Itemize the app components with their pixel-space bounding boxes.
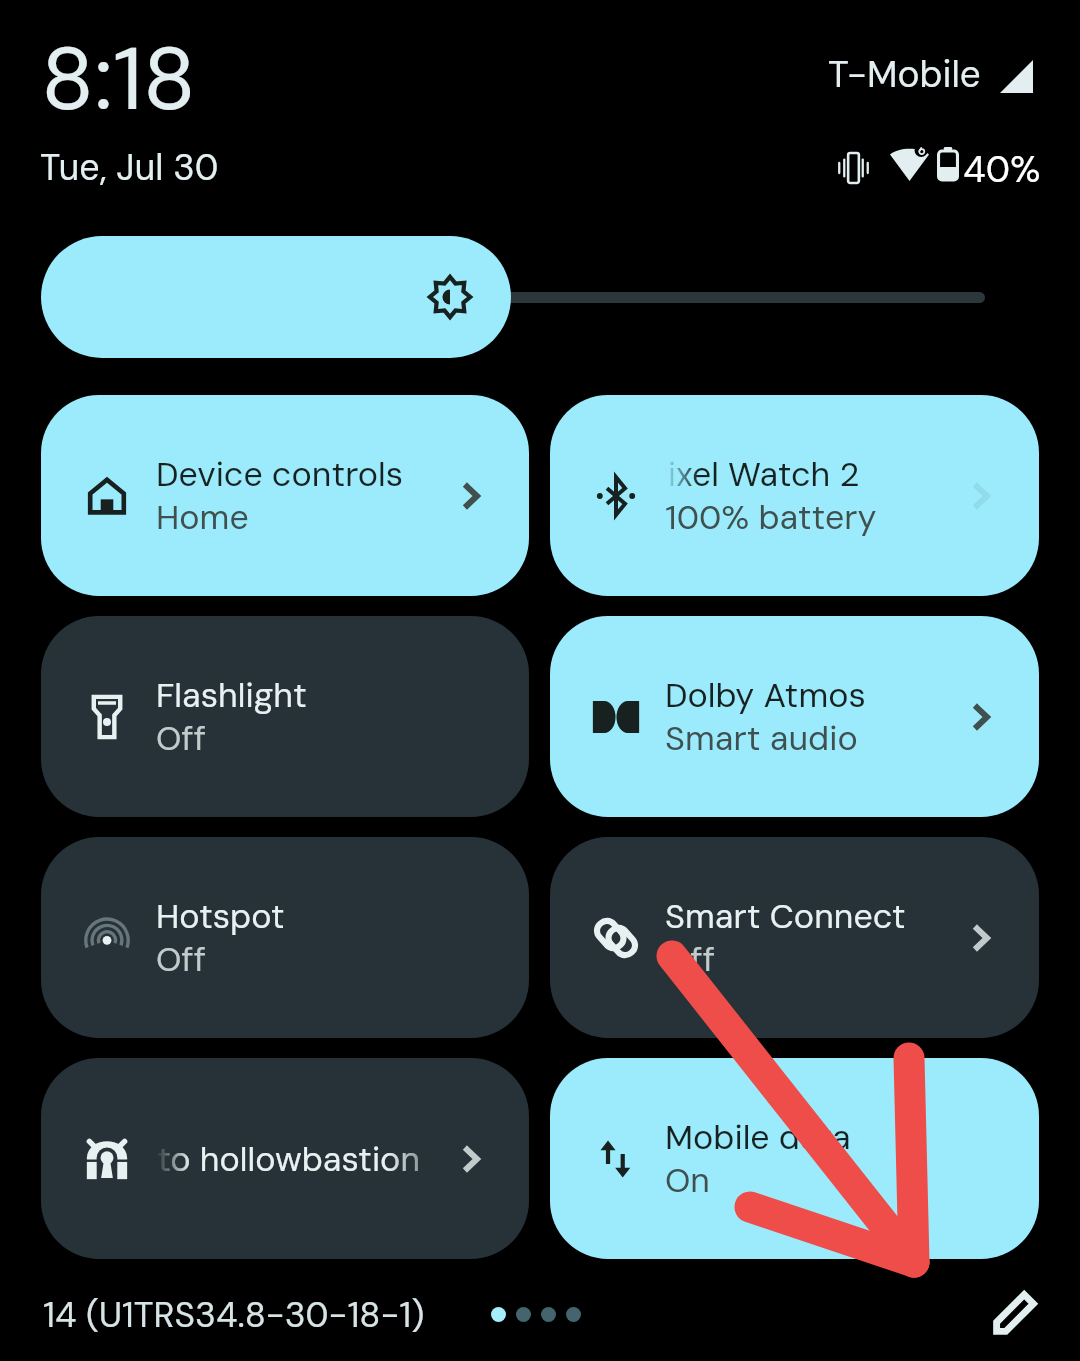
staticText: Dolby Atmos: [665, 673, 866, 717]
staticText: Tue, Jul 30: [40, 144, 219, 191]
button[interactable]: Edit tiles: [992, 1290, 1038, 1336]
button[interactable]: Dolby Atmos: [550, 616, 1039, 817]
staticText: On: [665, 1158, 711, 1202]
staticText: T-Mobile: [828, 50, 981, 98]
staticText: Flashlight: [156, 673, 307, 717]
staticText: Smart Connect: [665, 894, 906, 938]
staticText: 8:18: [41, 22, 196, 137]
staticText: Off: [156, 937, 206, 981]
button[interactable]: Device controls: [41, 395, 529, 596]
staticText: Off: [156, 716, 206, 760]
button[interactable]: Hotspot: [41, 837, 529, 1038]
staticText: Mobile data: [665, 1115, 851, 1159]
staticText: 100% battery: [665, 495, 877, 539]
staticText: Device controls: [156, 452, 404, 496]
other: Signal strength: [1000, 60, 1033, 93]
other: Vibrate: [835, 153, 872, 183]
button[interactable]: Pixel Watch 2: [550, 395, 1039, 596]
button[interactable]: to hollowbastion: [41, 1058, 529, 1259]
staticText: Off: [665, 937, 715, 981]
staticText: Pixel Watch 2: [648, 452, 860, 496]
other: Wi-Fi: [890, 147, 929, 181]
staticText: to hollowbastion: [157, 1137, 421, 1181]
button[interactable]: Flashlight: [41, 616, 529, 817]
other: Battery: [937, 147, 959, 180]
staticText: Home: [156, 495, 249, 539]
staticText: 40%: [963, 145, 1041, 193]
staticText: Hotspot: [156, 894, 285, 938]
button[interactable]: Brightness: [41, 236, 511, 358]
button[interactable]: Smart Connect: [550, 837, 1039, 1038]
staticText: 14 (U1TRS34.8-30-18-1): [43, 1292, 425, 1338]
staticText: Smart audio: [665, 716, 858, 760]
button[interactable]: Mobile data: [550, 1058, 1039, 1259]
